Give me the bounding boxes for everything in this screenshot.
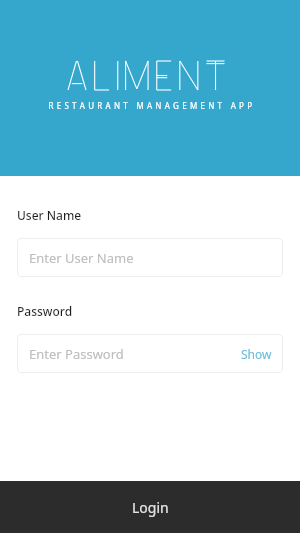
staticText: Enter User Name <box>29 249 134 267</box>
button[interactable]: Enter User Name <box>17 238 283 277</box>
staticText: Password <box>17 303 73 319</box>
staticText: User Name <box>17 207 82 223</box>
staticText: R E S T A U R A N T M A N A G E M E N T … <box>48 100 253 111</box>
staticText: Login <box>132 498 169 517</box>
button[interactable]: Enter Password <box>17 334 283 373</box>
button[interactable]: Login <box>0 481 300 533</box>
button[interactable]: Show <box>230 334 283 373</box>
staticText: Enter Password <box>29 345 124 363</box>
staticText: Show <box>241 346 272 362</box>
